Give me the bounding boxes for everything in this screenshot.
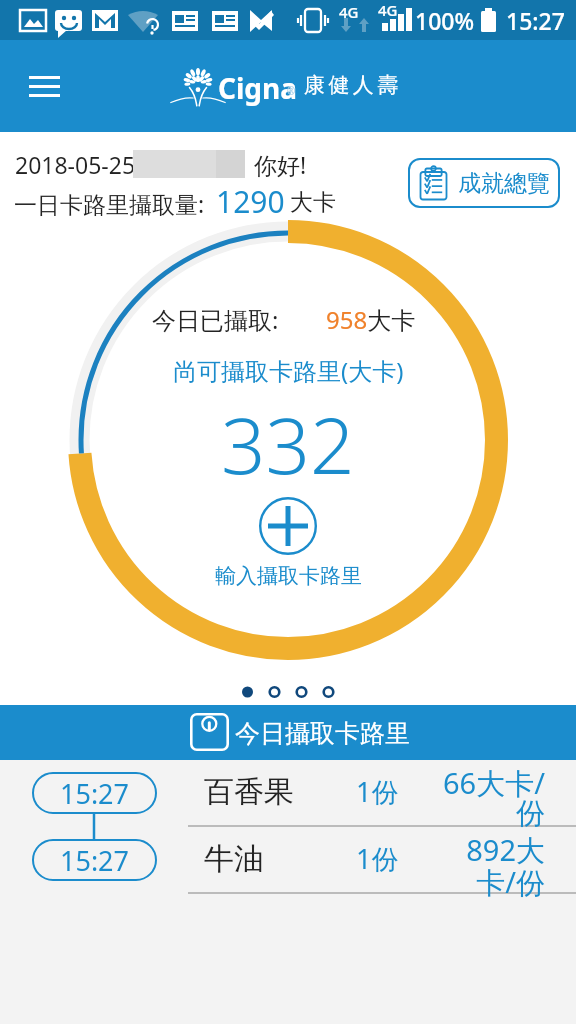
staticText: 332: [221, 391, 355, 497]
staticText: 尚可攝取卡路里(大卡): [173, 354, 404, 387]
staticText: 1份: [356, 773, 399, 810]
staticText: 1290: [216, 181, 285, 222]
staticText: 百香果: [204, 773, 294, 811]
staticText: 輸入攝取卡路里: [215, 563, 362, 589]
button[interactable]: 今日攝取卡路里: [0, 705, 576, 760]
staticText: 康健人壽: [304, 72, 402, 98]
staticText: 你好!: [254, 149, 307, 180]
staticText: 4G: [339, 2, 359, 22]
staticText: 958大卡: [326, 303, 416, 336]
staticText: 15:27: [60, 842, 130, 879]
button[interactable]: Menu: [12, 58, 76, 114]
button[interactable]: 15:27: [0, 827, 576, 894]
staticText: 15:27: [60, 775, 130, 812]
staticText: 份: [420, 795, 545, 832]
button[interactable]: 15:27: [0, 760, 576, 827]
button[interactable]: 成就總覽: [408, 158, 560, 208]
staticText: 卡/份: [420, 862, 545, 902]
staticText: Cigna: [218, 69, 298, 107]
staticText: 一日卡路里攝取量:: [14, 188, 205, 219]
staticText: 牛油: [204, 840, 264, 878]
staticText: 892大: [420, 830, 545, 870]
staticText: ®: [287, 84, 296, 98]
staticText: 大卡: [290, 188, 336, 217]
staticText: 4G: [378, 0, 398, 20]
staticText: 今日攝取卡路里: [235, 718, 410, 749]
staticText: 成就總覽: [458, 169, 550, 198]
staticText: 1份: [356, 840, 399, 877]
staticText: 今日已攝取:: [152, 303, 279, 336]
staticText: 100%: [415, 5, 475, 36]
button[interactable]: Add calories: [259, 497, 317, 555]
staticText: 66大卡/: [420, 763, 545, 803]
staticText: 15:27: [506, 5, 565, 36]
staticText: 2018-05-25: [15, 149, 136, 180]
